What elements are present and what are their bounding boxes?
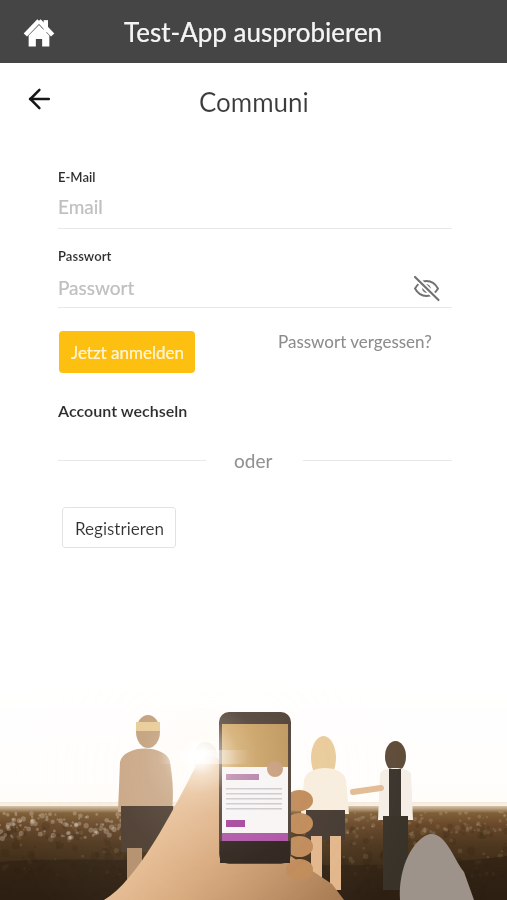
- staticText: Passwort vergessen?: [278, 331, 432, 351]
- button[interactable]: Registrieren: [62, 507, 176, 548]
- button[interactable]: Passwort vergessen?: [271, 322, 439, 360]
- button[interactable]: Account wechseln: [54, 397, 192, 424]
- staticText: E-Mail: [58, 169, 96, 185]
- button[interactable]: Jetzt anmelden: [59, 331, 195, 373]
- button[interactable]: Back: [16, 76, 61, 121]
- staticText: Registrieren: [75, 518, 164, 538]
- button[interactable]: Show password: [410, 272, 442, 304]
- staticText: Passwort: [58, 276, 135, 299]
- staticText: Communi: [199, 86, 309, 117]
- staticText: Email: [58, 195, 103, 218]
- staticText: oder: [234, 449, 273, 472]
- staticText: Passwort: [58, 248, 112, 264]
- button[interactable]: Home: [16, 9, 62, 55]
- staticText: Test-App ausprobieren: [124, 16, 383, 47]
- staticText: Jetzt anmelden: [71, 342, 184, 362]
- staticText: Account wechseln: [58, 401, 188, 420]
